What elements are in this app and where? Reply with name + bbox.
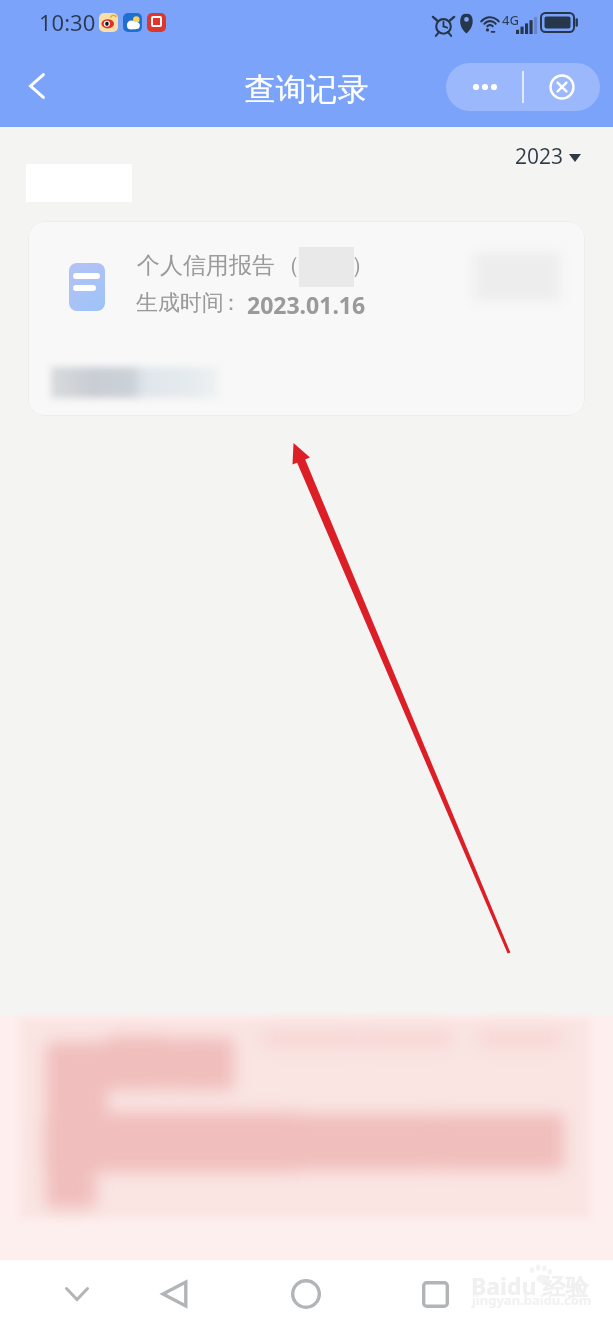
staticText: （ (277, 251, 300, 280)
button[interactable]: 个人信用报告 (28, 221, 585, 416)
button[interactable]: 2023 (515, 142, 581, 171)
button[interactable]: Back (141, 1260, 209, 1328)
button[interactable]: Close mini program (524, 63, 600, 111)
staticText: 10:30 (39, 7, 96, 37)
staticText: 4G (502, 11, 519, 29)
staticText: 查询记录 (0, 70, 613, 109)
staticText: ） (351, 251, 374, 280)
staticText: jingyan.baidu.com (472, 1291, 592, 1309)
button[interactable]: Recent apps (401, 1260, 469, 1328)
button[interactable]: Hide keyboard (43, 1260, 111, 1328)
staticText: 生成时间 (136, 289, 224, 317)
staticText: 个人信用报告 (137, 251, 275, 280)
button[interactable]: More options (446, 63, 522, 111)
staticText: 2023.01.16 (247, 289, 366, 320)
staticText: Baidu 经验 (471, 1270, 589, 1301)
button[interactable]: Home (272, 1260, 340, 1328)
staticText: 2023 (515, 142, 564, 171)
button[interactable]: Back (13, 62, 60, 109)
staticText: ： (220, 289, 242, 317)
